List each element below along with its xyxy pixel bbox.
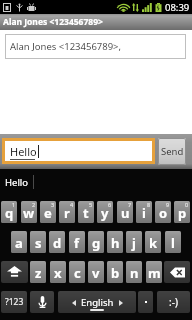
button[interactable]: Hello	[0, 170, 33, 194]
staticText: q	[5, 204, 14, 222]
button[interactable]: g	[88, 231, 104, 253]
button[interactable]: b	[107, 261, 123, 283]
staticText: 3	[51, 201, 55, 208]
staticText: 5	[89, 201, 93, 208]
button[interactable]: i	[136, 201, 152, 223]
staticText: e	[44, 204, 52, 222]
staticText: k	[149, 234, 158, 252]
staticText: ?123	[5, 296, 24, 308]
staticText: u	[121, 204, 130, 222]
button[interactable]: Alan Jones <123456789>,	[5, 34, 186, 59]
staticText: Send	[161, 145, 184, 158]
staticText: j	[132, 234, 136, 252]
staticText: s	[35, 234, 42, 252]
staticText: l	[171, 234, 175, 252]
button[interactable]: ?123	[1, 291, 27, 313]
button[interactable]: f	[69, 231, 85, 253]
staticText: g	[92, 234, 101, 252]
button[interactable]: j	[126, 231, 142, 253]
staticText: 2	[32, 201, 36, 208]
staticText: d	[53, 234, 62, 252]
staticText: 4	[70, 201, 74, 208]
staticText: English	[81, 296, 114, 309]
staticText: Alan Jones <123456789>,	[10, 40, 122, 53]
staticText: b	[111, 264, 120, 282]
staticText: o	[159, 204, 168, 222]
button[interactable]: Voice input	[30, 291, 54, 313]
staticText: 08:39	[165, 1, 190, 14]
button[interactable]: h	[107, 231, 123, 253]
staticText: p	[178, 204, 187, 222]
button[interactable]: m	[146, 261, 162, 283]
staticText: a	[15, 234, 23, 252]
button[interactable]: r	[59, 201, 75, 223]
button[interactable]: e	[40, 201, 56, 223]
staticText: h	[111, 234, 120, 252]
staticText: i	[142, 204, 146, 222]
button[interactable]: y	[97, 201, 113, 223]
staticText: t	[83, 204, 89, 222]
staticText: 9	[166, 201, 170, 208]
staticText: 7	[128, 201, 132, 208]
staticText: 1	[12, 201, 16, 208]
staticText: c	[74, 264, 81, 282]
button[interactable]: c	[69, 261, 85, 283]
staticText: v	[92, 264, 100, 282]
button[interactable]: Delete	[164, 261, 190, 283]
button[interactable]: English	[58, 291, 136, 313]
button[interactable]: o	[155, 201, 171, 223]
staticText: 6	[108, 201, 112, 208]
staticText: f	[74, 234, 80, 252]
button[interactable]: t	[78, 201, 94, 223]
button[interactable]: p	[174, 201, 190, 223]
button[interactable]	[138, 291, 153, 313]
button[interactable]: w	[21, 201, 37, 223]
button[interactable]: k	[145, 231, 161, 253]
button[interactable]: q	[1, 201, 17, 223]
button[interactable]: Send	[158, 138, 186, 165]
button[interactable]: l	[165, 231, 181, 253]
button[interactable]: v	[88, 261, 104, 283]
staticText: r	[64, 204, 70, 222]
button[interactable]: :-)	[157, 291, 190, 313]
staticText: x	[54, 264, 62, 282]
staticText: w	[23, 204, 35, 222]
button[interactable]: d	[49, 231, 65, 253]
staticText: Hello	[10, 144, 37, 159]
button[interactable]: a	[11, 231, 27, 253]
button[interactable]: Alan Jones <123456789>	[0, 14, 192, 30]
staticText: m	[148, 264, 161, 282]
button[interactable]: s	[30, 231, 46, 253]
button[interactable]: z	[30, 261, 46, 283]
button[interactable]: n	[126, 261, 142, 283]
staticText: z	[35, 264, 42, 282]
button[interactable]: Shift	[1, 261, 28, 283]
button[interactable]: u	[117, 201, 133, 223]
staticText: n	[130, 264, 139, 282]
staticText: 0	[185, 201, 189, 208]
staticText: y	[101, 204, 109, 222]
staticText: Alan Jones <123456789>	[3, 16, 103, 28]
button[interactable]: Hello	[5, 141, 152, 161]
staticText: 8	[147, 201, 151, 208]
staticText: :-)	[169, 295, 178, 309]
button[interactable]: x	[50, 261, 66, 283]
staticText: Hello	[5, 176, 29, 189]
